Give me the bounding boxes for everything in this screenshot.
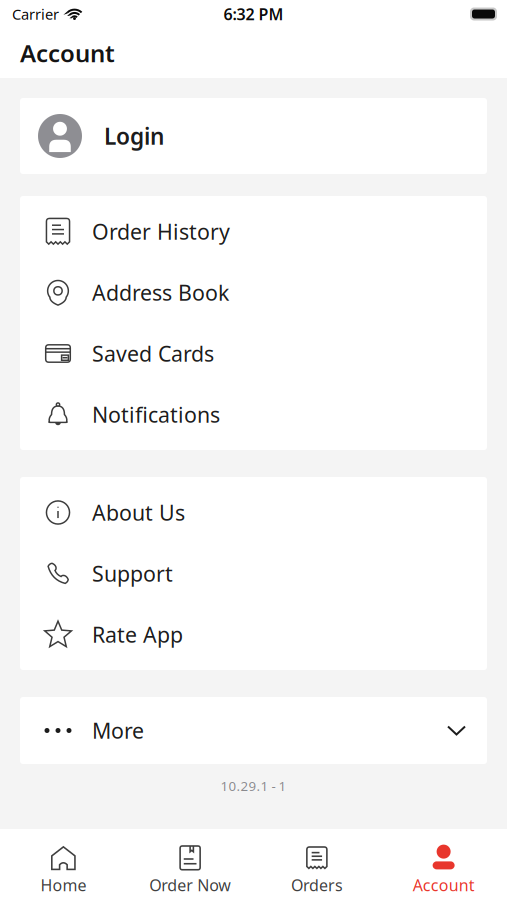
button[interactable]: Saved Cards (20, 323, 487, 384)
staticText: More (92, 716, 144, 745)
staticText: 6:32 PM (223, 3, 283, 25)
button[interactable]: Account (380, 829, 507, 900)
staticText: Orders (291, 874, 343, 896)
button[interactable]: Orders (253, 829, 380, 900)
button[interactable]: Support (20, 543, 487, 604)
staticText: Account (20, 37, 115, 69)
button[interactable]: More (20, 697, 487, 764)
staticText: Home (40, 874, 86, 896)
button[interactable]: Order Now (127, 829, 254, 900)
staticText: Account (413, 874, 475, 896)
staticText: Login (104, 121, 164, 151)
staticText: 10.29.1 - 1 (220, 777, 286, 795)
staticText: Rate App (92, 620, 183, 649)
button[interactable]: Order History (20, 201, 487, 262)
button[interactable]: About Us (20, 482, 487, 543)
staticText: Notifications (92, 400, 220, 429)
button[interactable]: Address Book (20, 262, 487, 323)
button[interactable]: Notifications (20, 384, 487, 445)
staticText: Support (92, 559, 173, 588)
staticText: Address Book (92, 278, 229, 307)
button[interactable]: Home (0, 829, 127, 900)
staticText: Saved Cards (92, 339, 214, 368)
staticText: About Us (92, 498, 185, 527)
staticText: Order History (92, 217, 230, 246)
staticText: Order Now (149, 874, 231, 896)
button[interactable]: Login (20, 98, 487, 174)
button[interactable]: Rate App (20, 604, 487, 665)
staticText: Carrier (12, 4, 59, 24)
